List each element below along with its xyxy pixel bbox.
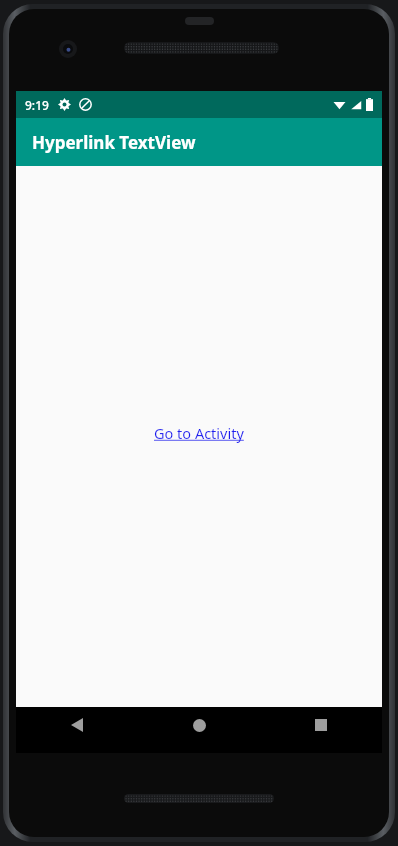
- button[interactable]: Go to Activity: [150, 421, 248, 445]
- button[interactable]: Back: [16, 707, 138, 753]
- staticText: Hyperlink TextView: [32, 131, 196, 154]
- button[interactable]: Recent apps: [260, 707, 382, 753]
- button[interactable]: Home: [138, 707, 260, 753]
- staticText: 9:19: [25, 97, 49, 113]
- staticText: Go to Activity: [154, 423, 244, 443]
